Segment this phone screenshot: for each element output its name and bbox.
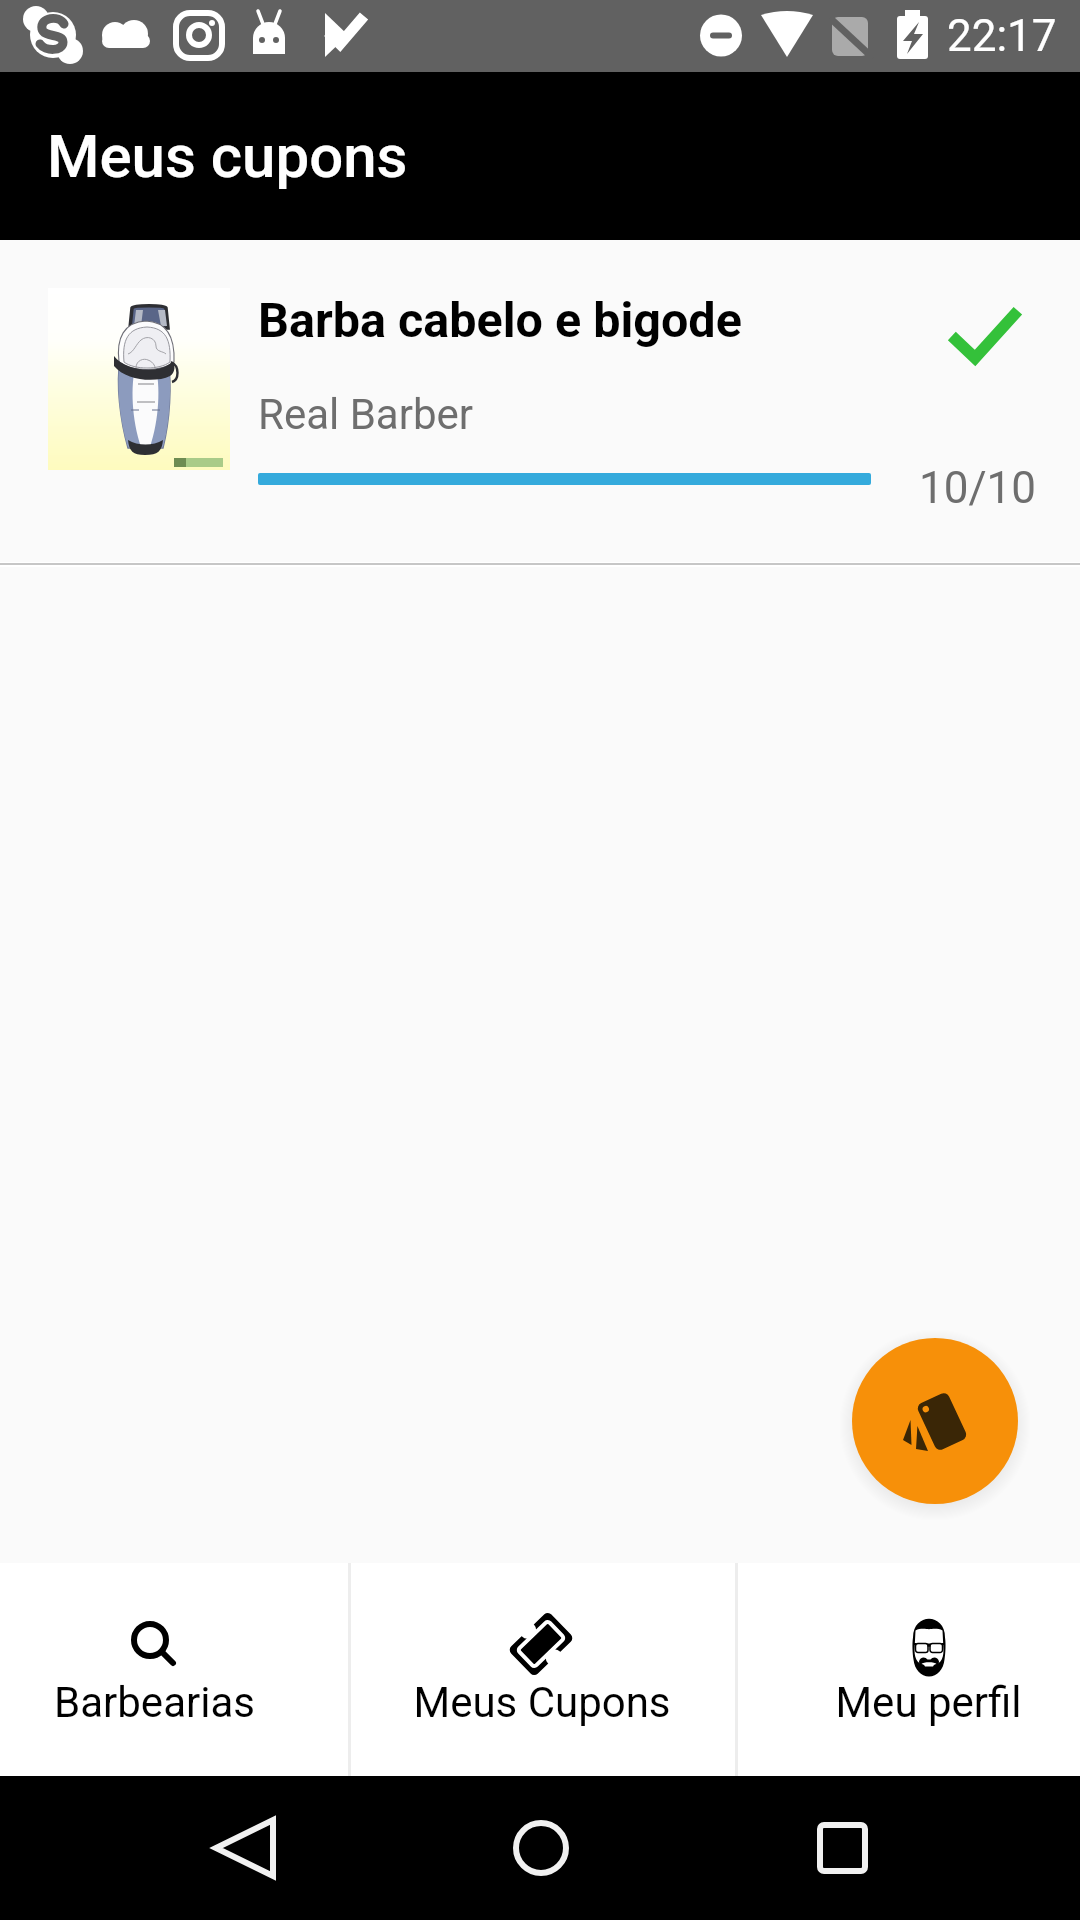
staticText: 22:17 [947, 10, 1057, 62]
button[interactable]: Meus Cupons [351, 1563, 738, 1776]
button[interactable]: Barba cabelo e bigode [0, 240, 1080, 562]
staticText: Meu perfil [835, 1678, 1022, 1727]
staticText: Meus cupons [47, 121, 408, 191]
button[interactable]: Barbearias [0, 1563, 351, 1776]
staticText: Barbearias [54, 1678, 255, 1727]
staticText: Real Barber [258, 390, 473, 439]
staticText: Barba cabelo e bigode [258, 292, 742, 349]
button[interactable]: Meu perfil [738, 1563, 1080, 1776]
staticText: 10/10 [919, 462, 1037, 514]
button[interactable]: Novo cupom [852, 1338, 1018, 1504]
staticText: Meus Cupons [413, 1678, 671, 1727]
